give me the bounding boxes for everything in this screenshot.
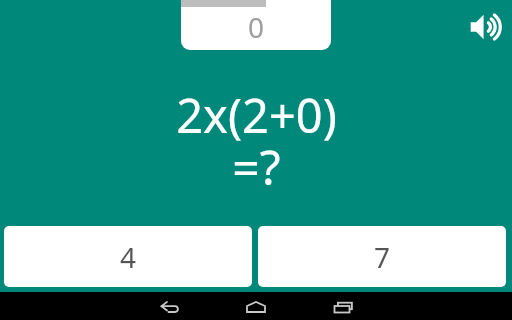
- button[interactable]: [470, 10, 504, 44]
- button[interactable]: [0, 292, 170, 320]
- staticText: =?: [232, 134, 281, 199]
- staticText: 2x(2+0): [176, 83, 337, 147]
- button[interactable]: [170, 292, 341, 320]
- staticText: 0: [248, 8, 265, 46]
- staticText: 4: [120, 238, 137, 276]
- button[interactable]: 7: [258, 226, 506, 287]
- button[interactable]: [341, 292, 512, 320]
- staticText: 7: [374, 238, 391, 276]
- button[interactable]: 4: [4, 226, 252, 287]
